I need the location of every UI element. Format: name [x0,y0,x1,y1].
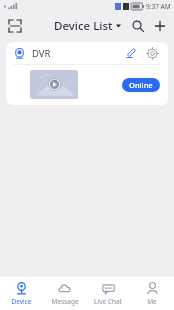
button[interactable]: DVR [6,42,168,105]
button[interactable]: Live Chat [86,279,130,309]
button[interactable]: Message [43,279,86,309]
button[interactable]: Scan QR code [5,16,25,36]
staticText: Me [147,297,157,306]
button[interactable]: Online [122,78,160,92]
staticText: Online [129,80,153,90]
staticText: Live Chat [94,297,122,306]
button[interactable]: Device [0,279,43,309]
button[interactable]: Device settings [144,45,160,61]
button[interactable]: Play live view [30,70,78,99]
button[interactable]: Search [128,16,148,36]
staticText: Message [51,297,79,306]
staticText: Device [11,297,32,306]
staticText: DVR [32,47,51,60]
button[interactable]: Me [130,279,174,309]
staticText: 9:37 AM [146,2,171,11]
button[interactable]: Add device [150,16,170,36]
staticText: Device List [54,18,113,34]
button[interactable]: Device List [54,18,121,34]
button[interactable]: Edit device [123,45,139,61]
